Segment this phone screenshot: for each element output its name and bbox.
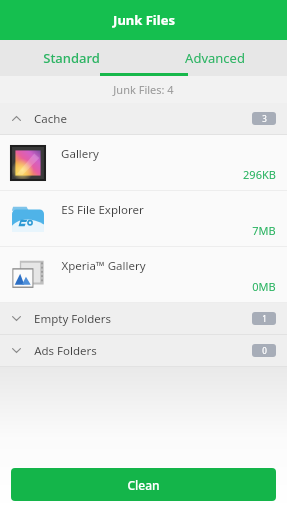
button[interactable]: Standard bbox=[0, 40, 143, 76]
staticText: 3 bbox=[262, 113, 267, 124]
button[interactable]: Clean bbox=[11, 468, 276, 501]
staticText: Clean bbox=[127, 477, 160, 493]
staticText: 7MB bbox=[252, 223, 276, 238]
staticText: Junk Files: 4 bbox=[113, 82, 174, 97]
button[interactable]: Empty Folders bbox=[0, 303, 287, 334]
staticText: Advanced bbox=[185, 49, 245, 67]
staticText: Ads Folders bbox=[34, 343, 97, 359]
staticText: Gallery bbox=[61, 146, 99, 162]
staticText: 0MB bbox=[252, 279, 276, 294]
button[interactable]: Advanced bbox=[143, 40, 287, 76]
staticText: Standard bbox=[43, 49, 100, 67]
button[interactable]: Gallery bbox=[0, 135, 287, 190]
staticText: Junk Files bbox=[113, 11, 175, 29]
staticText: Cache bbox=[34, 111, 67, 127]
staticText: ES File Explorer bbox=[61, 202, 144, 218]
staticText: 0 bbox=[262, 345, 267, 356]
staticText: 1 bbox=[262, 313, 267, 324]
staticText: 296KB bbox=[243, 167, 276, 182]
button[interactable]: Cache bbox=[0, 103, 287, 134]
button[interactable]: ES File Explorer bbox=[0, 191, 287, 246]
button[interactable]: Xperia™ Gallery bbox=[0, 247, 287, 302]
staticText: Empty Folders bbox=[34, 311, 111, 327]
button[interactable]: Ads Folders bbox=[0, 335, 287, 366]
staticText: Xperia™ Gallery bbox=[61, 258, 146, 274]
